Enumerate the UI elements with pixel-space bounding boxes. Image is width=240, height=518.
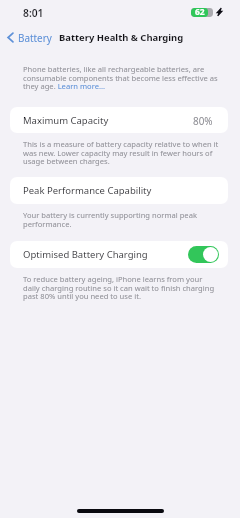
staticText: 80%: [193, 114, 213, 127]
staticText: Optimised Battery Charging: [23, 248, 148, 261]
other: Back: [7, 32, 14, 43]
staticText: This is a measure of battery capacity re…: [23, 139, 219, 166]
staticText: Peak Performance Capability: [23, 184, 152, 197]
staticText: 62: [195, 8, 205, 15]
staticText: 8:01: [23, 6, 44, 20]
staticText: To reduce battery ageing, iPhone learns …: [23, 274, 219, 301]
staticText: Battery Health & Charging: [59, 31, 184, 44]
button[interactable]: Optimised Battery Charging: [10, 241, 228, 268]
button[interactable]: Maximum Capacity: [10, 107, 228, 133]
button[interactable]: Optimised Battery Charging: [188, 246, 219, 263]
staticText: Battery: [18, 31, 52, 44]
staticText: Your battery is currently supporting nor…: [23, 210, 219, 229]
button[interactable]: Back: [7, 30, 52, 44]
button[interactable]: Peak Performance Capability: [10, 177, 228, 204]
staticText: Maximum Capacity: [23, 114, 109, 127]
staticText: Phone batteries, like all rechargeable b…: [23, 64, 219, 91]
